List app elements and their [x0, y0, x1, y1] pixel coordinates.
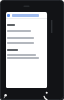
button[interactable]: [6, 23, 47, 44]
button[interactable]: [6, 48, 47, 61]
button[interactable]: [6, 13, 47, 19]
